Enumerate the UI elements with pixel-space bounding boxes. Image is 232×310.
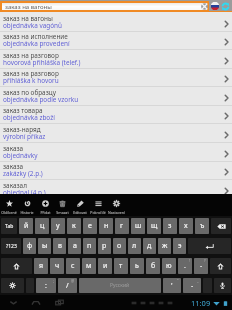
- button[interactable]: заказ-наряд: [0, 124, 232, 143]
- button[interactable]: !: [178, 258, 192, 274]
- button[interactable]: заказ на вагоны: [0, 13, 232, 32]
- button[interactable]: г: [115, 218, 129, 234]
- staticText: я: [39, 261, 44, 271]
- staticText: Nastavení: [108, 210, 125, 215]
- button[interactable]: ж: [158, 238, 171, 254]
- button[interactable]: х: [179, 218, 193, 234]
- staticText: ц: [40, 221, 45, 231]
- button[interactable]: Editovat: [71, 194, 89, 216]
- button[interactable]: щ: [147, 218, 161, 234]
- button[interactable]: д: [143, 238, 156, 254]
- button[interactable]: ю: [162, 258, 176, 274]
- button[interactable]: ш: [131, 218, 145, 234]
- staticText: zakázky (2.p.): [3, 169, 43, 178]
- staticText: Smazat: [56, 210, 69, 215]
- button[interactable]: ?123: [1, 238, 21, 254]
- staticText: ь: [135, 261, 139, 271]
- button[interactable]: э: [173, 238, 186, 254]
- button[interactable]: ц: [35, 218, 49, 234]
- button[interactable]: р: [98, 238, 111, 254]
- button[interactable]: Recent apps: [52, 295, 66, 310]
- button[interactable]: Settings: [1, 278, 24, 293]
- staticText: м: [86, 261, 92, 271]
- button[interactable]: в: [53, 238, 66, 254]
- staticText: objednávka vagónů: [3, 21, 62, 30]
- button[interactable]: п: [83, 238, 96, 254]
- button[interactable]: а: [68, 238, 81, 254]
- button[interactable]: у: [51, 218, 65, 234]
- button[interactable]: Swap languages: [219, 0, 232, 12]
- staticText: заказ на разговор: [3, 69, 59, 78]
- button[interactable]: ъ: [195, 218, 209, 234]
- button[interactable]: заказал: [0, 180, 232, 194]
- button[interactable]: м: [82, 258, 96, 274]
- button[interactable]: ?: [194, 258, 208, 274]
- button[interactable]: заказ на разговор: [0, 50, 232, 69]
- staticText: ы: [42, 241, 48, 251]
- button[interactable]: Language Russian: [210, 0, 219, 12]
- button[interactable]: о: [113, 238, 126, 254]
- button[interactable]: ф: [23, 238, 36, 254]
- button[interactable]: Tab: [1, 218, 17, 234]
- button[interactable]: л: [128, 238, 141, 254]
- button[interactable]: заказ товара: [0, 105, 232, 124]
- button[interactable]: заказ по образцу: [0, 87, 232, 106]
- button[interactable]: ч: [50, 258, 64, 274]
- button[interactable]: ": [163, 278, 181, 293]
- button[interactable]: ;: [36, 278, 56, 293]
- staticText: л: [132, 241, 137, 251]
- button[interactable]: Backspace: [211, 218, 231, 234]
- button[interactable]: з: [163, 218, 177, 234]
- button[interactable]: к: [67, 218, 81, 234]
- button[interactable]: н: [99, 218, 113, 234]
- staticText: Editovat: [73, 210, 87, 215]
- button[interactable]: @: [58, 278, 77, 293]
- button[interactable]: б: [146, 258, 160, 274]
- staticText: д: [147, 241, 152, 251]
- button[interactable]: заказа: [0, 143, 232, 162]
- button[interactable]: Historie: [18, 194, 36, 216]
- button[interactable]: Přidat: [36, 194, 54, 216]
- button[interactable]: ы: [38, 238, 51, 254]
- button[interactable]: Русский: [79, 278, 161, 293]
- staticText: т: [119, 261, 123, 271]
- staticText: /: [66, 281, 69, 291]
- staticText: заказ-наряд: [3, 125, 41, 134]
- button[interactable]: заказ на вагоны: [2, 3, 207, 10]
- button[interactable]: Hide keyboard: [6, 295, 20, 310]
- button[interactable]: Shift: [1, 258, 32, 274]
- button[interactable]: заказа: [0, 161, 232, 180]
- button[interactable]: Home: [29, 295, 43, 310]
- button[interactable]: Nastavení: [107, 194, 125, 216]
- staticText: й: [24, 221, 29, 231]
- button[interactable]: и: [98, 258, 112, 274]
- button[interactable]: Shift: [210, 258, 231, 274]
- button[interactable]: Clear text: [200, 2, 208, 10]
- staticText: заказ на вагоны: [3, 14, 53, 23]
- button[interactable]: заказ на разговор: [0, 68, 232, 87]
- button[interactable]: Oblíbené: [0, 194, 18, 216]
- button[interactable]: т: [114, 258, 128, 274]
- staticText: и: [103, 261, 108, 271]
- button[interactable]: Pokročilé: [89, 194, 107, 216]
- button[interactable]: е: [83, 218, 97, 234]
- staticText: Přidat: [40, 210, 51, 215]
- staticText: н: [104, 221, 109, 231]
- staticText: ?: [204, 258, 206, 263]
- button[interactable]: заказ на исполнение: [0, 31, 232, 50]
- button[interactable]: Enter: [188, 238, 231, 254]
- button[interactable]: Smazat: [53, 194, 71, 216]
- staticText: заказ на вагоны: [5, 3, 52, 9]
- staticText: заказа: [3, 162, 24, 171]
- button[interactable]: с: [66, 258, 80, 274]
- button[interactable]: Voice input: [214, 278, 231, 293]
- button[interactable]: й: [19, 218, 33, 234]
- staticText: е: [88, 221, 92, 231]
- button[interactable]: ь: [130, 258, 144, 274]
- button[interactable]: я: [34, 258, 48, 274]
- staticText: ш: [135, 221, 142, 231]
- staticText: у: [56, 221, 60, 231]
- button[interactable]: _: [183, 278, 201, 293]
